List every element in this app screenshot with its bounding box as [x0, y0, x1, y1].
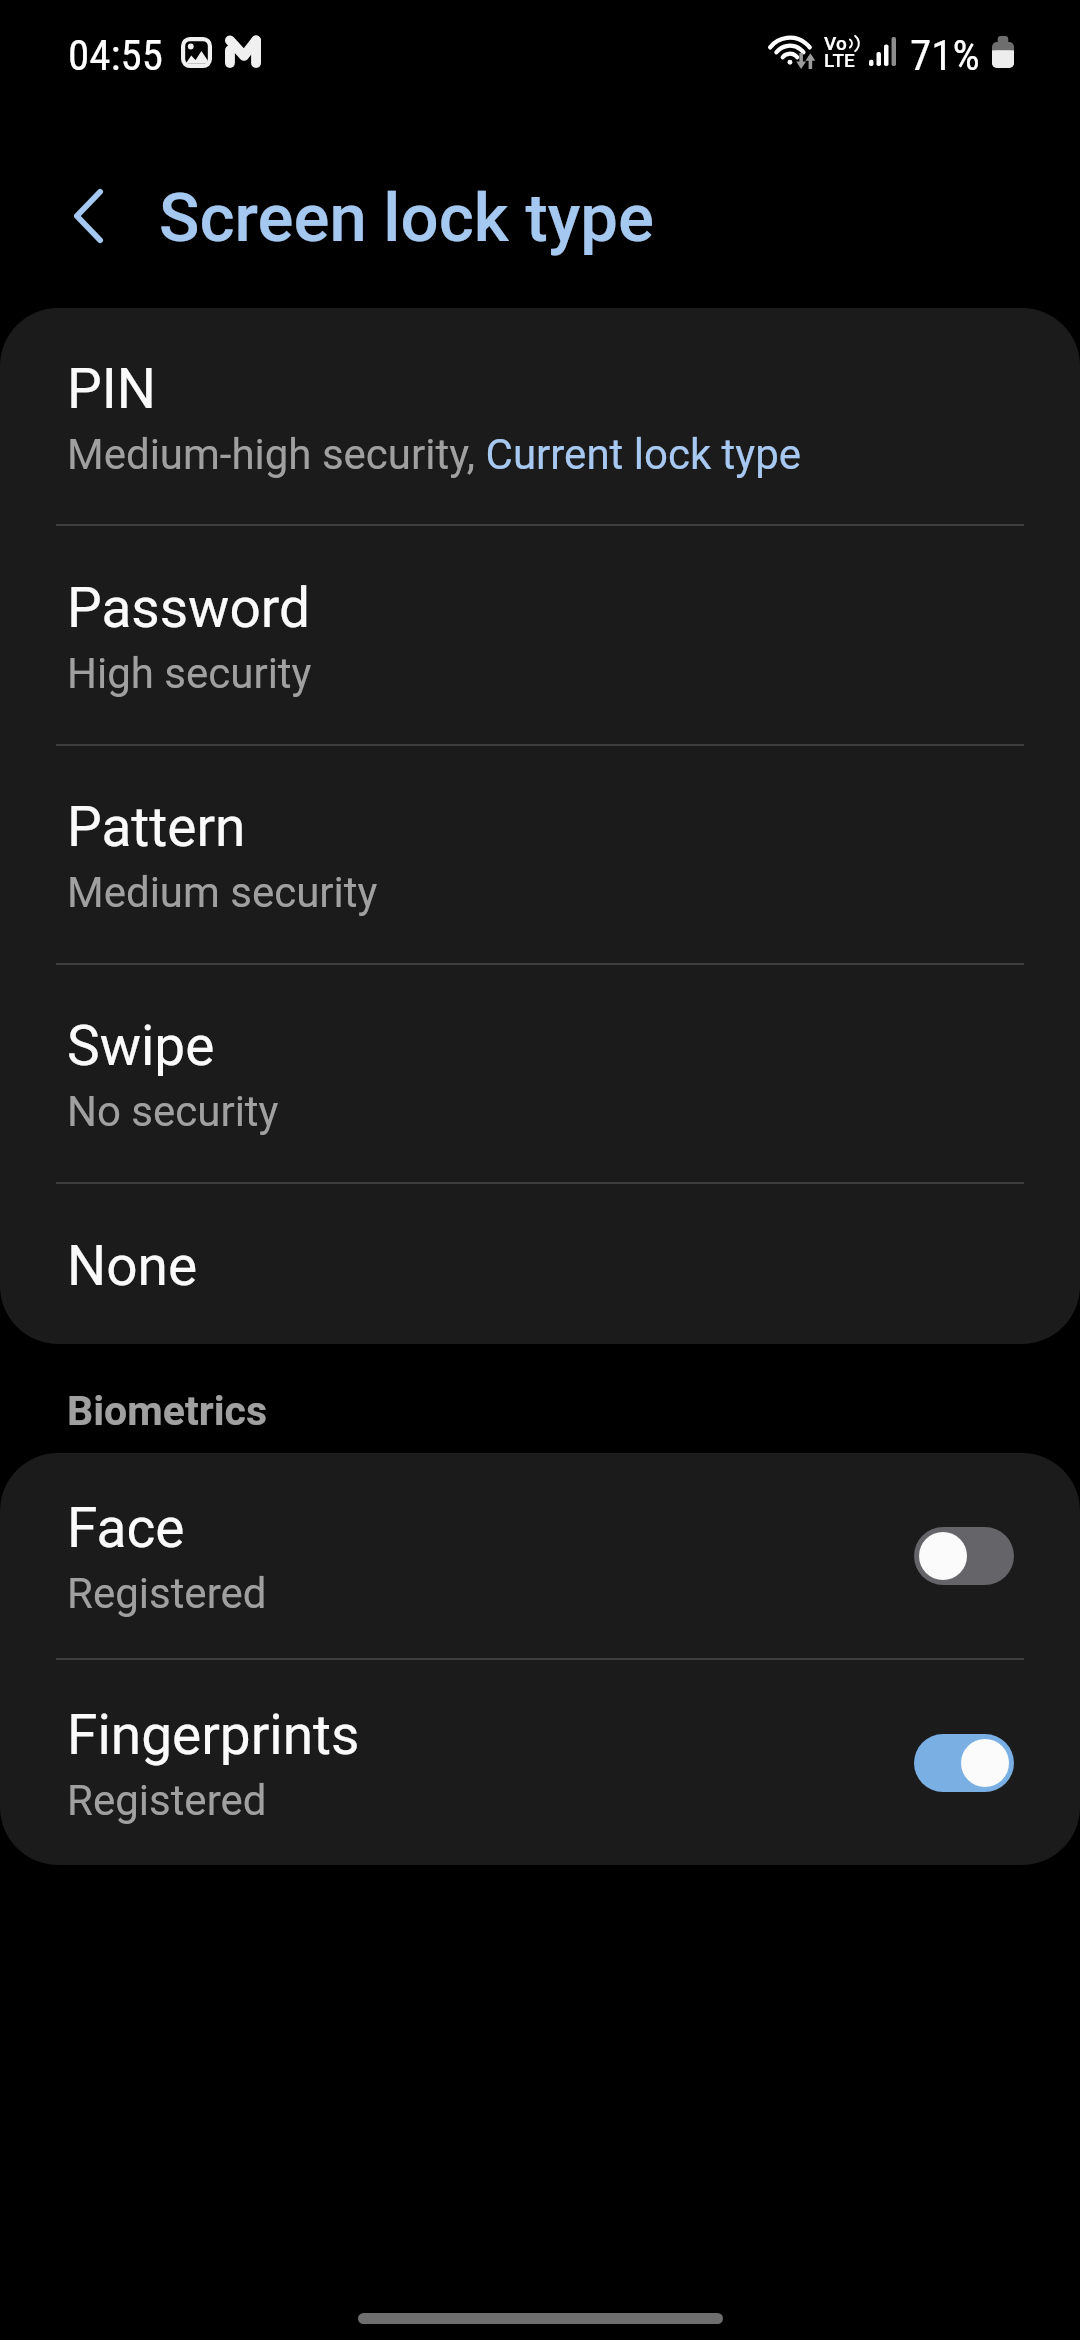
- staticText: LTE: [824, 49, 855, 71]
- staticText: No security: [67, 1087, 279, 1137]
- button[interactable]: Fingerprints: [914, 1734, 1014, 1792]
- staticText: Face: [67, 1496, 185, 1561]
- staticText: Fingerprints: [67, 1703, 360, 1768]
- staticText: Medium-high security, Current lock type: [67, 430, 802, 480]
- staticText: 04:55: [68, 30, 163, 81]
- staticText: Biometrics: [67, 1387, 268, 1435]
- staticText: Registered: [67, 1569, 267, 1619]
- staticText: Pattern: [67, 795, 246, 860]
- other: Wi-Fi: [771, 35, 815, 69]
- other: Gmail: [225, 35, 261, 68]
- staticText: Medium security: [67, 868, 378, 918]
- button[interactable]: Navigate up: [42, 170, 134, 262]
- button[interactable]: Swipe: [0, 965, 1080, 1182]
- button[interactable]: Fingerprints: [0, 1660, 1080, 1865]
- other: Battery: [992, 36, 1014, 68]
- button[interactable]: PIN: [0, 308, 1080, 524]
- staticText: Swipe: [67, 1014, 215, 1079]
- staticText: High security: [67, 649, 312, 699]
- other: Mobile signal: [869, 37, 896, 66]
- staticText: 71%: [910, 30, 980, 81]
- other: Gallery: [181, 37, 212, 68]
- staticText: PIN: [67, 357, 156, 422]
- button[interactable]: Face: [914, 1527, 1014, 1585]
- button[interactable]: None: [0, 1184, 1080, 1344]
- staticText: Password: [67, 576, 310, 641]
- staticText: Registered: [67, 1776, 267, 1826]
- other: VoLTE: [825, 36, 856, 68]
- staticText: Vo: [824, 32, 847, 54]
- button[interactable]: Pattern: [0, 746, 1080, 963]
- staticText: None: [67, 1234, 198, 1299]
- staticText: Screen lock type: [159, 178, 655, 257]
- button[interactable]: Face: [0, 1453, 1080, 1658]
- button[interactable]: Password: [0, 526, 1080, 744]
